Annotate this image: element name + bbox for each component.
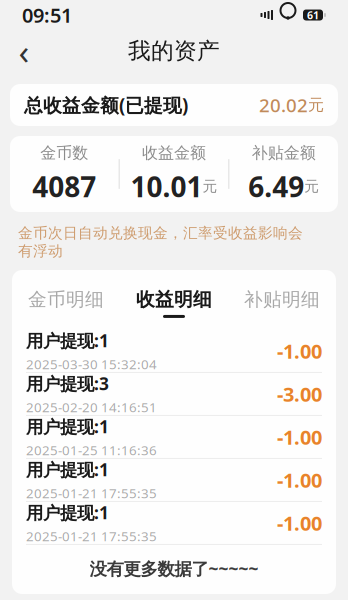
staticText: ‹ xyxy=(18,28,29,74)
staticText: 用户提现:1 xyxy=(26,415,109,438)
staticText: 2025-03-30 15:32:04 xyxy=(26,355,157,373)
staticText: -3.00 xyxy=(277,381,322,407)
staticText: 2025-01-21 17:55:35 xyxy=(26,527,157,545)
staticText: 2025-02-20 14:16:51 xyxy=(26,398,157,416)
staticText: 用户提现:3 xyxy=(26,372,109,395)
staticText: -1.00 xyxy=(277,424,322,450)
staticText: 金币数 xyxy=(40,143,88,163)
staticText: 2025-01-21 17:55:35 xyxy=(26,484,157,502)
staticText: 20.02 xyxy=(259,93,308,117)
staticText: 10.01 xyxy=(130,168,202,205)
button[interactable]: 收益明细 xyxy=(120,286,228,320)
staticText: 用户提现:1 xyxy=(26,329,109,352)
staticText: 09:51 xyxy=(22,2,72,28)
staticText: 6.49 xyxy=(248,168,304,205)
staticText: 补贴明细 xyxy=(244,288,320,311)
staticText: -1.00 xyxy=(277,510,322,536)
staticText: 61 xyxy=(307,8,319,22)
staticText: -1.00 xyxy=(277,338,322,364)
staticText: 金币次日自动兑换现金，汇率受收益影响会有浮动 xyxy=(18,224,303,260)
staticText: 元 xyxy=(304,177,319,195)
staticText: 用户提现:1 xyxy=(26,501,109,524)
staticText: 收益明细 xyxy=(136,288,212,311)
staticText: 元 xyxy=(202,177,217,195)
staticText: 用户提现:1 xyxy=(26,458,109,481)
staticText: 总收益金额(已提现) xyxy=(24,93,188,117)
button[interactable]: 补贴明细 xyxy=(228,286,336,320)
staticText: 我的资产 xyxy=(128,37,220,65)
button[interactable]: Back xyxy=(4,31,44,71)
staticText: 2025-01-25 11:16:36 xyxy=(26,441,157,459)
staticText: 元 xyxy=(308,95,324,115)
staticText: 没有更多数据了~~~~~ xyxy=(89,557,258,580)
staticText: 收益金额 xyxy=(142,143,206,163)
button[interactable]: 金币明细 xyxy=(12,286,120,320)
staticText: 4087 xyxy=(32,168,96,205)
staticText: 金币明细 xyxy=(28,288,104,311)
staticText: 补贴金额 xyxy=(252,143,316,163)
staticText: -1.00 xyxy=(277,467,322,493)
